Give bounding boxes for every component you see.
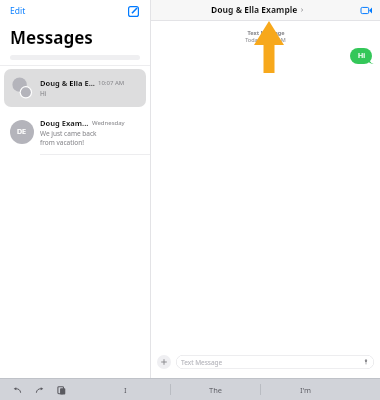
staticText: Text Message <box>181 358 223 367</box>
button[interactable]: I'm <box>261 379 350 400</box>
staticText: Today 10:07 AM <box>245 36 286 43</box>
staticText: Doug & Ella Example <box>211 4 298 16</box>
button[interactable]: Edit <box>8 5 28 17</box>
button[interactable]: I <box>80 379 170 400</box>
button[interactable]: Doug & Ella E... <box>4 69 146 107</box>
staticText: Text Message <box>247 29 285 36</box>
staticText: Hi <box>358 51 365 61</box>
button[interactable]: The <box>171 379 260 400</box>
staticText: Doug & Ella E... <box>40 78 95 88</box>
button[interactable]: Paste <box>54 383 68 397</box>
button[interactable]: Hi <box>350 48 372 64</box>
button[interactable]: Doug & Ella Example <box>211 4 304 16</box>
staticText: Wednesday <box>92 119 125 127</box>
button[interactable]: Text Message <box>176 355 374 369</box>
button[interactable]: Undo <box>10 383 24 397</box>
staticText: We just came back <box>40 129 97 138</box>
staticText: DE <box>17 127 27 137</box>
button[interactable]: Apps <box>157 355 171 369</box>
staticText: Hi <box>40 89 47 98</box>
staticText: Edit <box>10 5 26 17</box>
staticText: 10:07 AM <box>98 79 125 87</box>
staticText: The <box>209 385 223 395</box>
button[interactable]: DE <box>0 110 150 154</box>
staticText: from vacation! <box>40 138 84 147</box>
button[interactable]: Redo <box>32 383 46 397</box>
staticText: Messages <box>10 26 93 49</box>
staticText: I'm <box>300 385 312 395</box>
button[interactable]: New message <box>124 2 142 20</box>
button[interactable]: FaceTime video call <box>358 2 374 18</box>
staticText: I <box>124 385 127 395</box>
staticText: Doug Exam... <box>40 118 89 128</box>
